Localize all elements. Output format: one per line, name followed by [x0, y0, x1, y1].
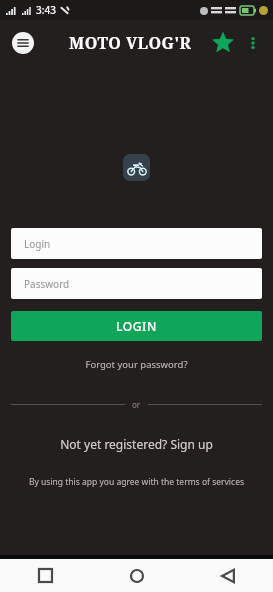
button[interactable]: Not yet registered? Sign up	[0, 436, 273, 452]
staticText: LOGIN	[116, 318, 157, 334]
staticText: Login	[24, 237, 51, 251]
button[interactable]: Favorite	[211, 31, 235, 55]
staticText: MOTO VLOG'R	[69, 32, 192, 54]
staticText: 3:43	[36, 3, 56, 17]
button[interactable]: Password	[11, 268, 262, 299]
staticText: Password	[24, 277, 70, 291]
button[interactable]: More options	[243, 33, 263, 53]
staticText: Not yet registered? Sign up	[0, 436, 273, 452]
button[interactable]: Menu	[12, 32, 34, 54]
button[interactable]: Recents	[0, 559, 91, 592]
staticText: By using this app you agree with the ter…	[0, 476, 273, 488]
button[interactable]: LOGIN	[11, 311, 262, 341]
staticText: Forgot your password?	[0, 358, 273, 371]
button[interactable]: Login	[11, 228, 262, 259]
button[interactable]: Home	[91, 559, 182, 592]
staticText: or	[132, 399, 141, 410]
button[interactable]: Back	[182, 559, 273, 592]
